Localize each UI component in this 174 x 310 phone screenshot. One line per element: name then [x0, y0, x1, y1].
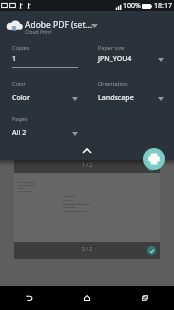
button[interactable]: Collapse options: [0, 143, 174, 159]
staticText: Orientation: [98, 80, 128, 87]
staticText: 18:17: [154, 1, 172, 11]
staticText: Pages: [12, 115, 28, 122]
staticText: Color: [12, 93, 30, 103]
staticText: Adobe PDF (set...: [25, 19, 93, 31]
button[interactable]: Copies: [12, 44, 78, 68]
button[interactable]: Adobe PDF (set...: [0, 12, 174, 38]
staticText: All 2: [12, 128, 27, 138]
button[interactable]: Back: [0, 286, 58, 310]
staticText: 100%: [123, 1, 141, 11]
button[interactable]: Recent apps: [116, 286, 174, 310]
staticText: Landscape: [98, 93, 134, 103]
button[interactable]: Print: [143, 148, 165, 170]
button[interactable]: 2 / 2: [14, 242, 160, 259]
button[interactable]: Pages: [12, 115, 78, 142]
staticText: Paper size: [98, 44, 125, 51]
button[interactable]: Orientation: [98, 80, 164, 107]
staticText: 1: [12, 54, 17, 64]
button[interactable]: Home: [58, 286, 116, 310]
button[interactable]: Color: [12, 80, 78, 107]
staticText: Copies: [12, 44, 30, 51]
staticText: 1 / 2: [82, 162, 93, 169]
staticText: 2 / 2: [82, 246, 93, 253]
staticText: Color: [12, 80, 26, 87]
staticText: JPN_YOU4: [98, 54, 132, 64]
button[interactable]: 1 / 2: [14, 159, 160, 244]
button[interactable]: Paper size: [98, 44, 164, 68]
staticText: Cloud Print: [25, 29, 52, 36]
